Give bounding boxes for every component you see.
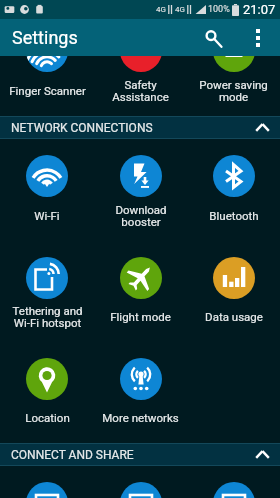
staticText: Location (25, 411, 70, 424)
staticText: Bluetooth (209, 209, 259, 222)
staticText: Flight mode (110, 310, 171, 323)
staticText: Wi-Fi (34, 209, 60, 222)
button[interactable]: Search (192, 19, 234, 56)
staticText: Power saving mode (199, 78, 268, 103)
staticText: 4G (156, 5, 166, 14)
staticText: Settings (12, 27, 78, 48)
staticText: Download booster (115, 203, 167, 228)
button[interactable]: Data usage (187, 241, 280, 342)
button[interactable]: Power saving mode (187, 56, 280, 116)
staticText: Safety Assistance (112, 78, 169, 103)
staticText: 4G (175, 5, 185, 14)
button[interactable]: More options (236, 19, 280, 56)
button[interactable]: Tethering and Wi-Fi hotspot (0, 241, 94, 342)
staticText: Data usage (205, 310, 263, 323)
button[interactable]: Collapse section (255, 450, 270, 459)
button[interactable]: Location (0, 342, 94, 443)
staticText: More networks (102, 411, 179, 424)
button[interactable]: Flight mode (94, 241, 187, 342)
button[interactable]: Collapse section (255, 123, 270, 132)
staticText: 21:07 (243, 2, 276, 17)
button[interactable]: NFC (0, 466, 94, 498)
button[interactable]: More networks (94, 342, 187, 443)
button[interactable]: Safety Assistance (94, 56, 187, 116)
staticText: CONNECT AND SHARE (11, 448, 134, 462)
button[interactable]: Finger Scanner (0, 56, 94, 116)
staticText: 100% (208, 4, 230, 15)
button[interactable]: S Beam (94, 466, 187, 498)
button[interactable]: Screen Mirroring (187, 466, 280, 498)
button[interactable]: Bluetooth (187, 139, 280, 241)
staticText: Finger Scanner (9, 84, 86, 97)
button[interactable]: Download booster (94, 139, 187, 241)
staticText: Tethering and Wi-Fi hotspot (12, 304, 83, 329)
button[interactable]: Wi-Fi (0, 139, 94, 241)
staticText: NETWORK CONNECTIONS (11, 121, 153, 135)
